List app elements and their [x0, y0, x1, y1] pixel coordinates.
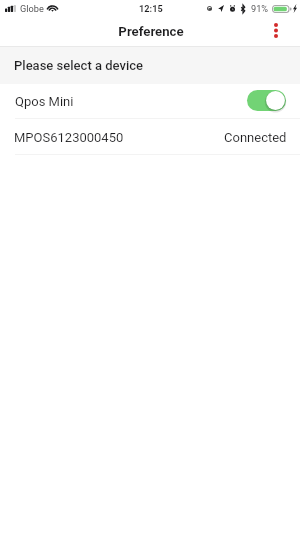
staticText: Connected: [224, 130, 287, 145]
button[interactable]: Qpos Mini: [0, 84, 300, 118]
button[interactable]: Qpos Mini enabled: [247, 90, 286, 111]
staticText: MPOS6123000450: [14, 130, 124, 145]
button[interactable]: MPOS6123000450: [0, 119, 300, 154]
staticText: 12:15: [139, 3, 163, 14]
staticText: Preference: [118, 24, 184, 39]
staticText: 91%: [251, 3, 269, 14]
staticText: Globe: [20, 3, 44, 14]
button[interactable]: More options: [263, 20, 289, 46]
staticText: Qpos Mini: [15, 94, 74, 109]
staticText: Please select a device: [14, 58, 144, 73]
